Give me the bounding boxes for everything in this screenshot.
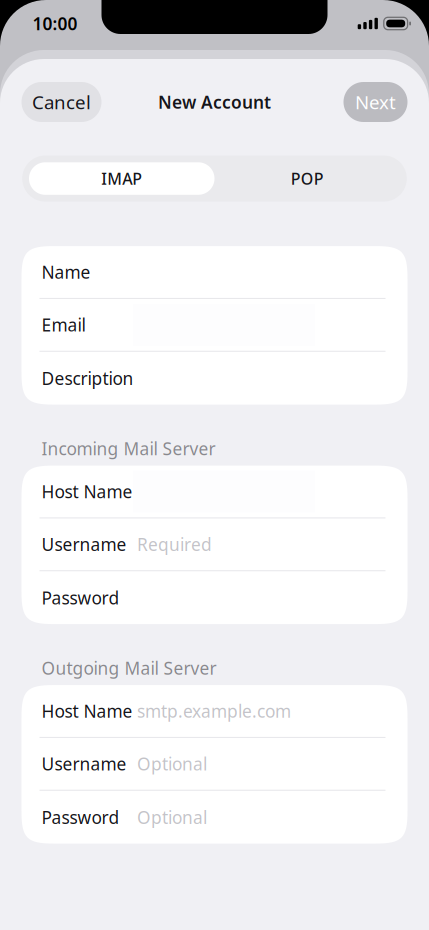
staticText: smtp.example.com xyxy=(137,699,291,722)
staticText: POP xyxy=(291,168,324,189)
button[interactable]: Host Name xyxy=(21,685,407,737)
staticText: Next xyxy=(355,90,396,114)
staticText: Name xyxy=(41,260,90,283)
staticText: Password xyxy=(41,806,119,829)
staticText: Outgoing Mail Server xyxy=(41,657,216,680)
staticText: Description xyxy=(41,367,133,390)
button[interactable]: Password xyxy=(21,791,407,843)
staticText: New Account xyxy=(158,90,271,113)
button[interactable]: IMAP xyxy=(29,162,214,195)
staticText: Username xyxy=(41,752,126,775)
button[interactable]: Username xyxy=(21,738,407,790)
staticText: Optional xyxy=(137,806,207,829)
staticText: Required xyxy=(137,533,212,556)
staticText: Password xyxy=(41,586,119,609)
staticText: 10:00 xyxy=(32,12,77,35)
staticText: Email xyxy=(41,313,85,336)
button[interactable]: Password xyxy=(21,571,407,624)
staticText: Host Name xyxy=(41,699,132,722)
staticText: Optional xyxy=(137,752,207,775)
button[interactable]: Name xyxy=(21,246,407,298)
staticText: Incoming Mail Server xyxy=(41,437,215,460)
staticText: IMAP xyxy=(101,168,142,189)
button[interactable]: Cancel xyxy=(21,82,101,122)
button[interactable]: Description xyxy=(21,352,407,405)
staticText: Username xyxy=(41,533,126,556)
staticText: Host Name xyxy=(41,480,132,503)
button[interactable]: Email xyxy=(21,299,407,351)
button[interactable]: Next xyxy=(343,82,407,122)
staticText: Cancel xyxy=(32,90,91,114)
button[interactable]: Username xyxy=(21,518,407,570)
button[interactable]: Host Name xyxy=(21,466,407,517)
button[interactable]: POP xyxy=(214,162,400,195)
